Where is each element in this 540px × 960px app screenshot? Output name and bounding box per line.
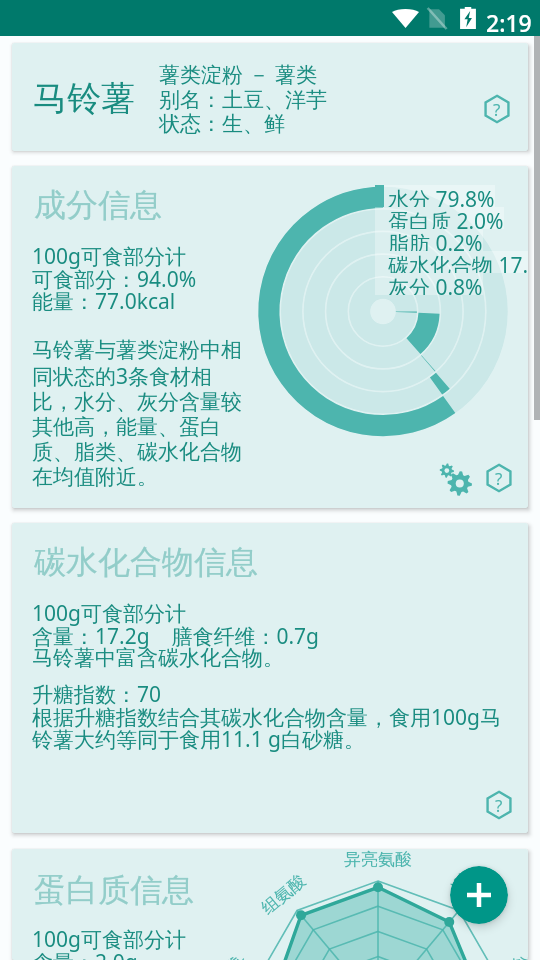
button[interactable]: Add [450, 866, 508, 924]
button[interactable]: Help [484, 790, 514, 820]
staticText: 水分 79.8% [388, 185, 495, 207]
staticText: ? [495, 794, 503, 817]
staticText: 100g可食部分计 可食部分：94.0% 能量：77.0kcal [32, 242, 197, 315]
staticText: 脂肪 0.2% [388, 229, 483, 251]
staticText: 碳水化合物 17.2% [388, 251, 528, 273]
staticText: 碳水化合物信息 [34, 542, 258, 582]
staticText: 100g可食部分计 含量：17.2g 膳食纤维：0.7g 马铃薯中富含碳水化合物… [32, 599, 319, 671]
button[interactable]: Help [484, 463, 514, 493]
staticText: 蛋白质 2.0% [388, 207, 504, 229]
staticText: ? [495, 467, 503, 490]
staticText: 马铃薯与薯类淀粉中相同状态的3条食材相比，水分、灰分含量较其他高，能量、蛋白质、… [32, 337, 247, 490]
staticText: 马铃薯 [33, 77, 135, 120]
staticText: 赖氨酸 [218, 955, 247, 960]
staticText: 100g可食部分计 含量：2.0g [32, 925, 186, 960]
staticText: 蛋氨酸 [510, 955, 528, 960]
staticText: 异亮氨酸 [344, 849, 412, 870]
staticText: ? [493, 98, 501, 121]
staticText: 2:19 [486, 7, 532, 38]
staticText: 成分信息 [34, 185, 162, 225]
staticText: 蛋白质信息 [34, 870, 194, 910]
button[interactable]: Help [482, 94, 512, 124]
staticText: 亮氨酸 [447, 870, 500, 919]
staticText: 灰分 0.8% [388, 273, 483, 295]
staticText: 组氨酸 [257, 870, 310, 919]
button[interactable]: Settings [438, 461, 472, 495]
staticText: 升糖指数：70 根据升糖指数结合其碳水化合物含量，食用100g马铃薯大约等同于食… [32, 680, 510, 753]
staticText: 薯类淀粉 － 薯类 别名：土豆、洋芋 状态：生、鲜 [159, 60, 327, 137]
